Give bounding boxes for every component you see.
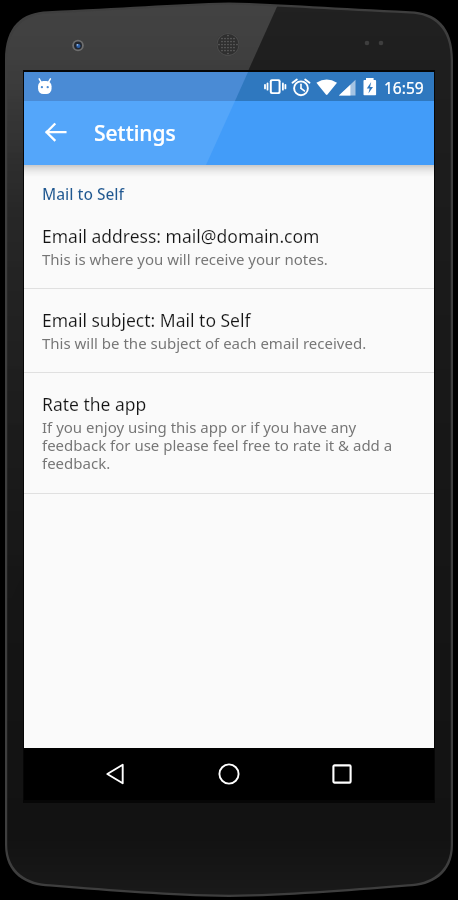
button[interactable]: Recent apps [318,748,366,800]
button[interactable]: Home [205,748,253,800]
staticText: 16:59 [384,77,424,98]
staticText: Settings [94,119,176,148]
staticText: This will be the subject of each email r… [42,333,367,353]
staticText: Rate the app [42,392,147,416]
button[interactable]: Email address: mail@domain.com [24,205,434,288]
button[interactable]: Rate the app [24,373,434,493]
staticText: Email subject: Mail to Self [42,308,251,332]
staticText: Mail to Self [42,183,125,204]
button[interactable]: Back [91,748,139,800]
button[interactable]: Navigate up [32,109,80,157]
staticText: This is where you will receive your note… [42,249,328,269]
staticText: Email address: mail@domain.com [42,224,320,248]
staticText: If you enjoy using this app or if you ha… [42,417,393,474]
button[interactable]: Email subject: Mail to Self [24,289,434,372]
